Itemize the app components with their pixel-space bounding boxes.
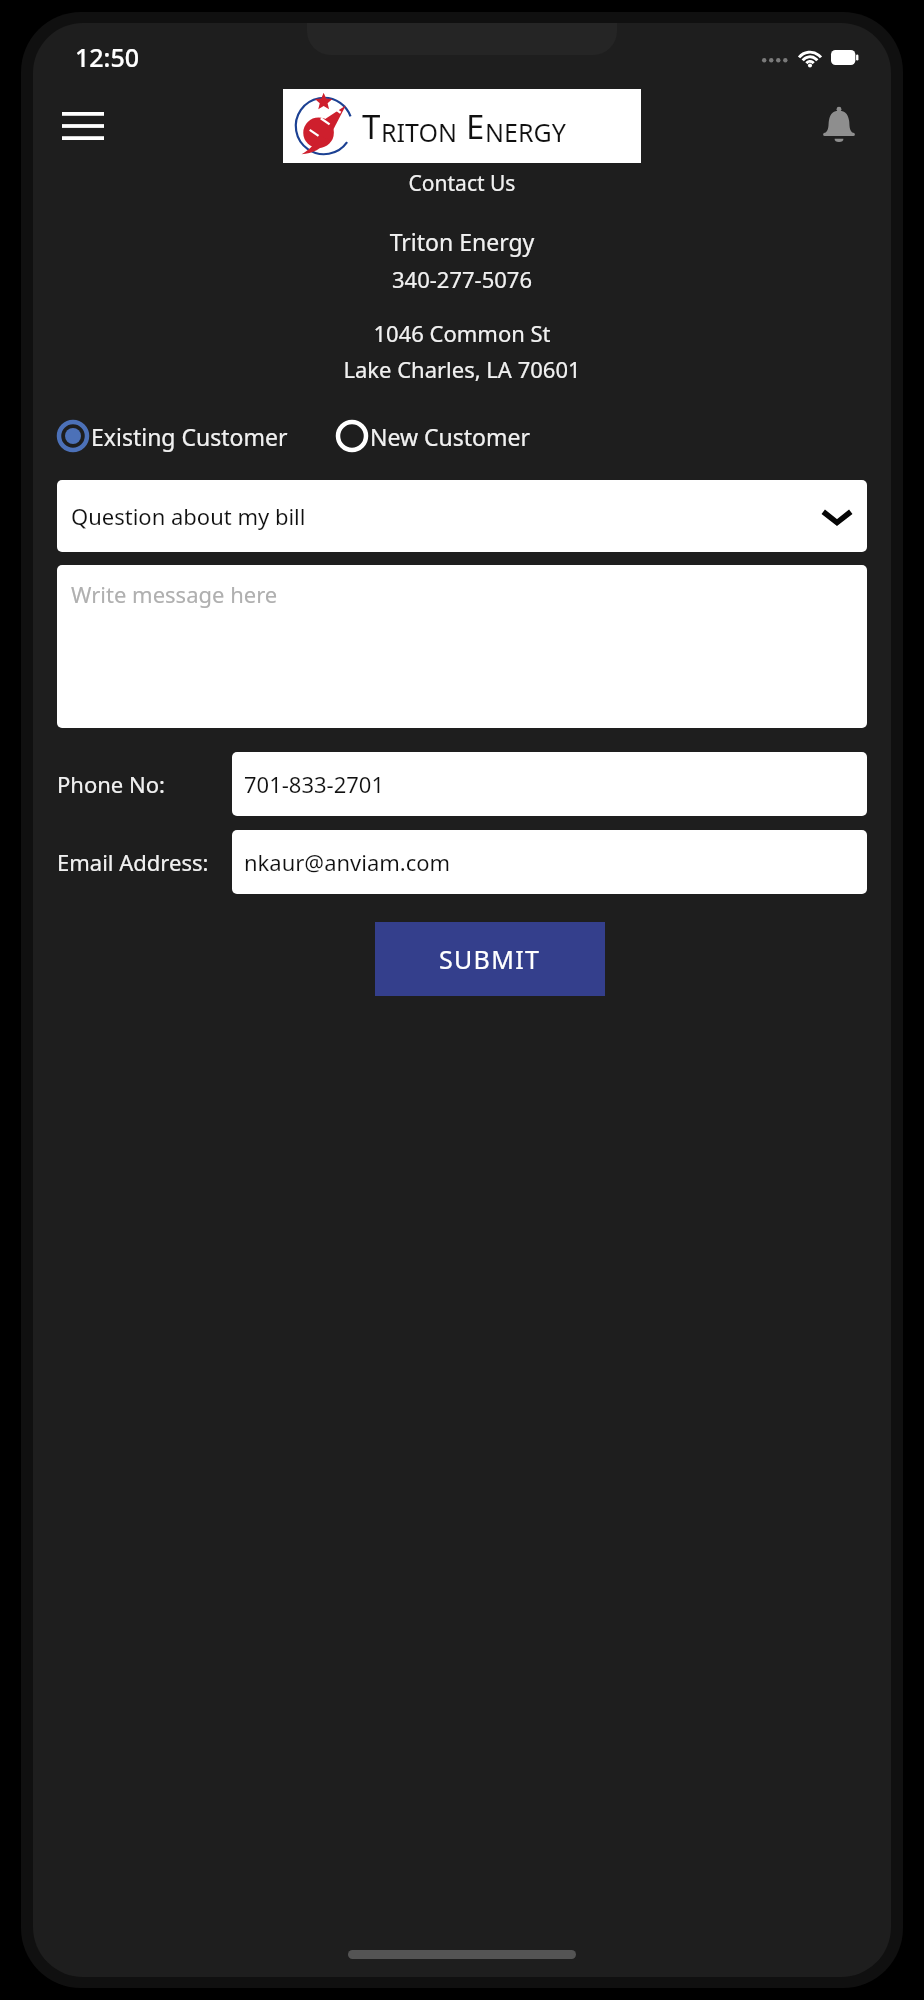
button[interactable]: nkaur@anviam.com <box>232 830 867 894</box>
button[interactable]: SUBMIT <box>375 922 605 996</box>
staticText: Lake Charles, LA 70601 <box>33 354 891 384</box>
staticText: 1046 Common St <box>33 318 891 348</box>
staticText: Existing Customer <box>91 421 288 452</box>
staticText: 701-833-2701 <box>244 769 385 799</box>
staticText: RITON <box>381 115 457 149</box>
staticText: 12:50 <box>75 40 140 74</box>
staticText: New Customer <box>370 421 531 452</box>
staticText: Write message here <box>71 579 278 609</box>
staticText: 340-277-5076 <box>33 264 891 294</box>
button[interactable]: Notifications <box>809 96 869 156</box>
button[interactable]: Write message here <box>57 565 867 728</box>
staticText: Contact Us <box>33 169 891 198</box>
staticText: NERGY <box>485 115 566 149</box>
button[interactable]: Question about my bill, topic dropdown <box>57 480 867 552</box>
button[interactable]: Triton Energy home <box>283 89 641 163</box>
staticText: Triton Energy <box>33 226 891 257</box>
button[interactable]: 701-833-2701 <box>232 752 867 816</box>
staticText: Email Address: <box>57 847 209 877</box>
staticText: T <box>362 104 381 149</box>
button[interactable]: Open navigation menu <box>53 96 113 156</box>
staticText: nkaur@anviam.com <box>244 847 451 877</box>
staticText: Question about my bill <box>71 501 306 531</box>
button[interactable]: New Customer <box>336 420 531 452</box>
staticText: SUBMIT <box>439 942 541 976</box>
button[interactable]: Existing Customer <box>57 420 288 452</box>
staticText: Phone No: <box>57 769 165 799</box>
staticText: E <box>466 104 485 149</box>
